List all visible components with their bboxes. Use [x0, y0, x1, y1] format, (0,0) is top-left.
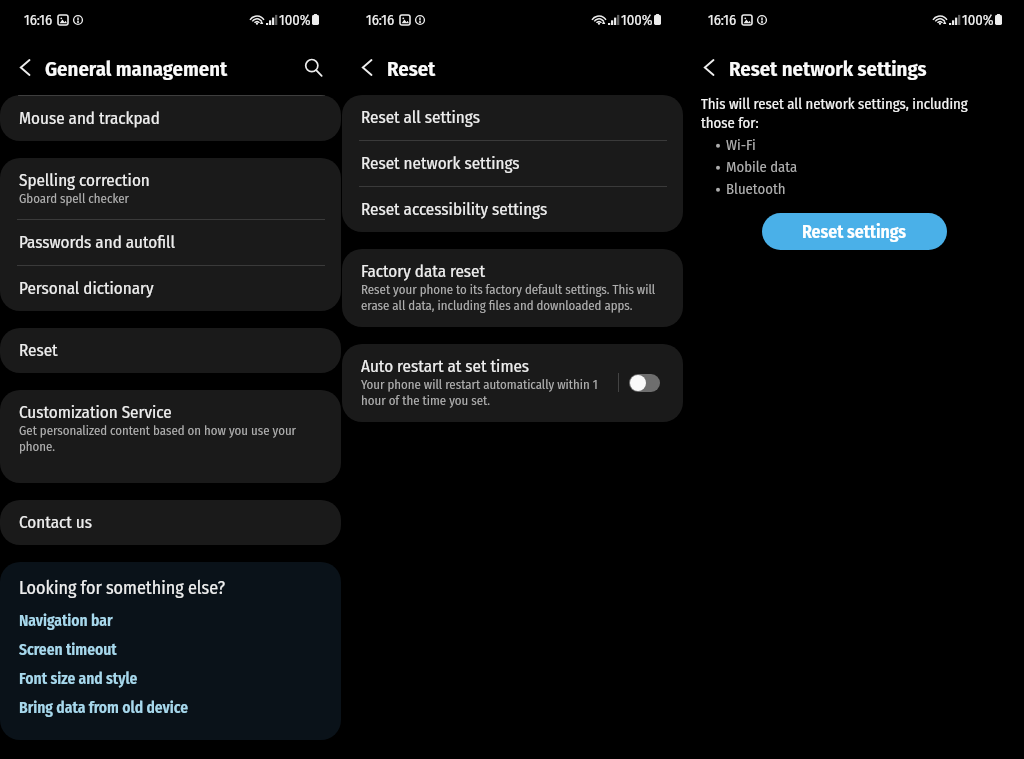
button[interactable]: Navigate up	[353, 53, 381, 81]
staticText: Reset all settings	[361, 107, 480, 127]
button[interactable]: Auto restart at set times	[629, 374, 660, 392]
button[interactable]: Reset accessibility settings	[342, 187, 683, 232]
staticText: Navigation bar	[19, 612, 113, 631]
button[interactable]: Spelling correction	[0, 158, 341, 219]
staticText: Your phone will restart automatically wi…	[361, 377, 607, 409]
staticText: Screen timeout	[19, 641, 117, 660]
staticText: Reset settings	[802, 221, 907, 242]
staticText: Looking for something else?	[19, 577, 225, 599]
staticText: 100%	[962, 11, 994, 28]
staticText: Reset network settings	[729, 57, 927, 82]
button[interactable]: Customization Service	[0, 390, 341, 483]
button[interactable]: Factory data reset	[342, 249, 683, 327]
staticText: Mobile data	[726, 158, 798, 176]
staticText: 16:16	[708, 11, 737, 28]
staticText: Bring data from old device	[19, 699, 188, 718]
staticText: Get personalized content based on how yo…	[19, 423, 322, 455]
staticText: Mouse and trackpad	[19, 108, 160, 128]
button[interactable]: Mouse and trackpad	[0, 95, 341, 141]
staticText: General management	[45, 57, 228, 82]
button[interactable]: Reset	[0, 328, 341, 373]
staticText: Auto restart at set times	[361, 356, 530, 376]
staticText: Reset network settings	[361, 153, 520, 173]
button[interactable]: Personal dictionary	[0, 266, 341, 311]
staticText: 100%	[279, 11, 311, 28]
button[interactable]: Search	[299, 53, 327, 81]
staticText: Gboard spell checker	[19, 191, 130, 206]
button[interactable]: Screen timeout	[19, 636, 322, 665]
staticText: Reset	[387, 57, 436, 82]
staticText: Passwords and autofill	[19, 232, 176, 252]
staticText: Personal dictionary	[19, 278, 154, 298]
button[interactable]: Passwords and autofill	[0, 220, 341, 265]
button[interactable]: Reset network settings	[342, 141, 683, 186]
staticText: Contact us	[19, 512, 92, 532]
staticText: Font size and style	[19, 670, 138, 689]
staticText: This will reset all network settings, in…	[701, 95, 974, 132]
button[interactable]: Reset settings	[762, 213, 947, 250]
button[interactable]: Navigate up	[695, 53, 723, 81]
staticText: Spelling correction	[19, 170, 150, 190]
staticText: Wi-Fi	[726, 136, 756, 154]
staticText: 100%	[621, 11, 653, 28]
staticText: Customization Service	[19, 402, 172, 422]
button[interactable]: Contact us	[0, 500, 341, 545]
button[interactable]: Navigation bar	[19, 607, 322, 636]
staticText: Factory data reset	[361, 261, 486, 281]
staticText: Reset accessibility settings	[361, 199, 548, 219]
button[interactable]: Reset all settings	[342, 95, 683, 140]
button[interactable]: Auto restart at set times	[342, 344, 683, 422]
staticText: Bluetooth	[726, 180, 786, 198]
staticText: 16:16	[24, 11, 53, 28]
staticText: Reset your phone to its factory default …	[361, 282, 664, 314]
button[interactable]: Font size and style	[19, 665, 322, 694]
staticText: Reset	[19, 340, 58, 360]
button[interactable]: Navigate up	[11, 53, 39, 81]
button[interactable]: Bring data from old device	[19, 694, 322, 723]
staticText: 16:16	[366, 11, 395, 28]
